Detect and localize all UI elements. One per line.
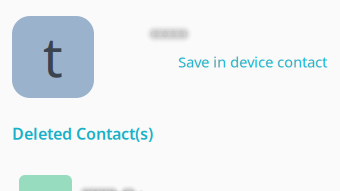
staticText: Deleted Contact(s) — [12, 123, 153, 144]
button[interactable]: Deleted contact — [0, 0, 340, 191]
staticText: t — [43, 20, 63, 92]
staticText: Save in device contact — [178, 52, 327, 71]
button[interactable]: Contact photo — [12, 16, 94, 98]
button[interactable]: Save in device contact — [178, 52, 327, 71]
